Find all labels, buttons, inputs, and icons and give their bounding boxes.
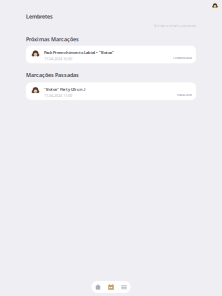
staticText: Pack Preenchimento Labial • "Botox" — [44, 50, 114, 55]
staticText: 17-04-2024 16:00 — [44, 56, 72, 61]
staticText: "Botox" Party (25 un.) — [44, 86, 85, 92]
button[interactable]: "Botox" Party (25 un.) — [26, 82, 196, 100]
staticText: REALIZADA — [177, 93, 192, 96]
staticText: 11-04-2024 11:00 — [44, 93, 72, 98]
button[interactable]: Perfil — [211, 3, 219, 11]
staticText: Sem mais resultados para mostrar — [154, 24, 196, 28]
button[interactable]: Pack Preenchimento Labial • "Botox" — [26, 46, 196, 63]
button[interactable]: Início — [91, 281, 104, 293]
staticText: Marcações Passadas — [26, 71, 79, 78]
button[interactable]: Mais — [117, 281, 130, 293]
button[interactable]: Marcações — [104, 281, 117, 293]
staticText: Próximas Marcações — [26, 36, 79, 43]
staticText: Lembretes — [26, 13, 53, 20]
staticText: CONFIRMADA — [173, 56, 192, 60]
